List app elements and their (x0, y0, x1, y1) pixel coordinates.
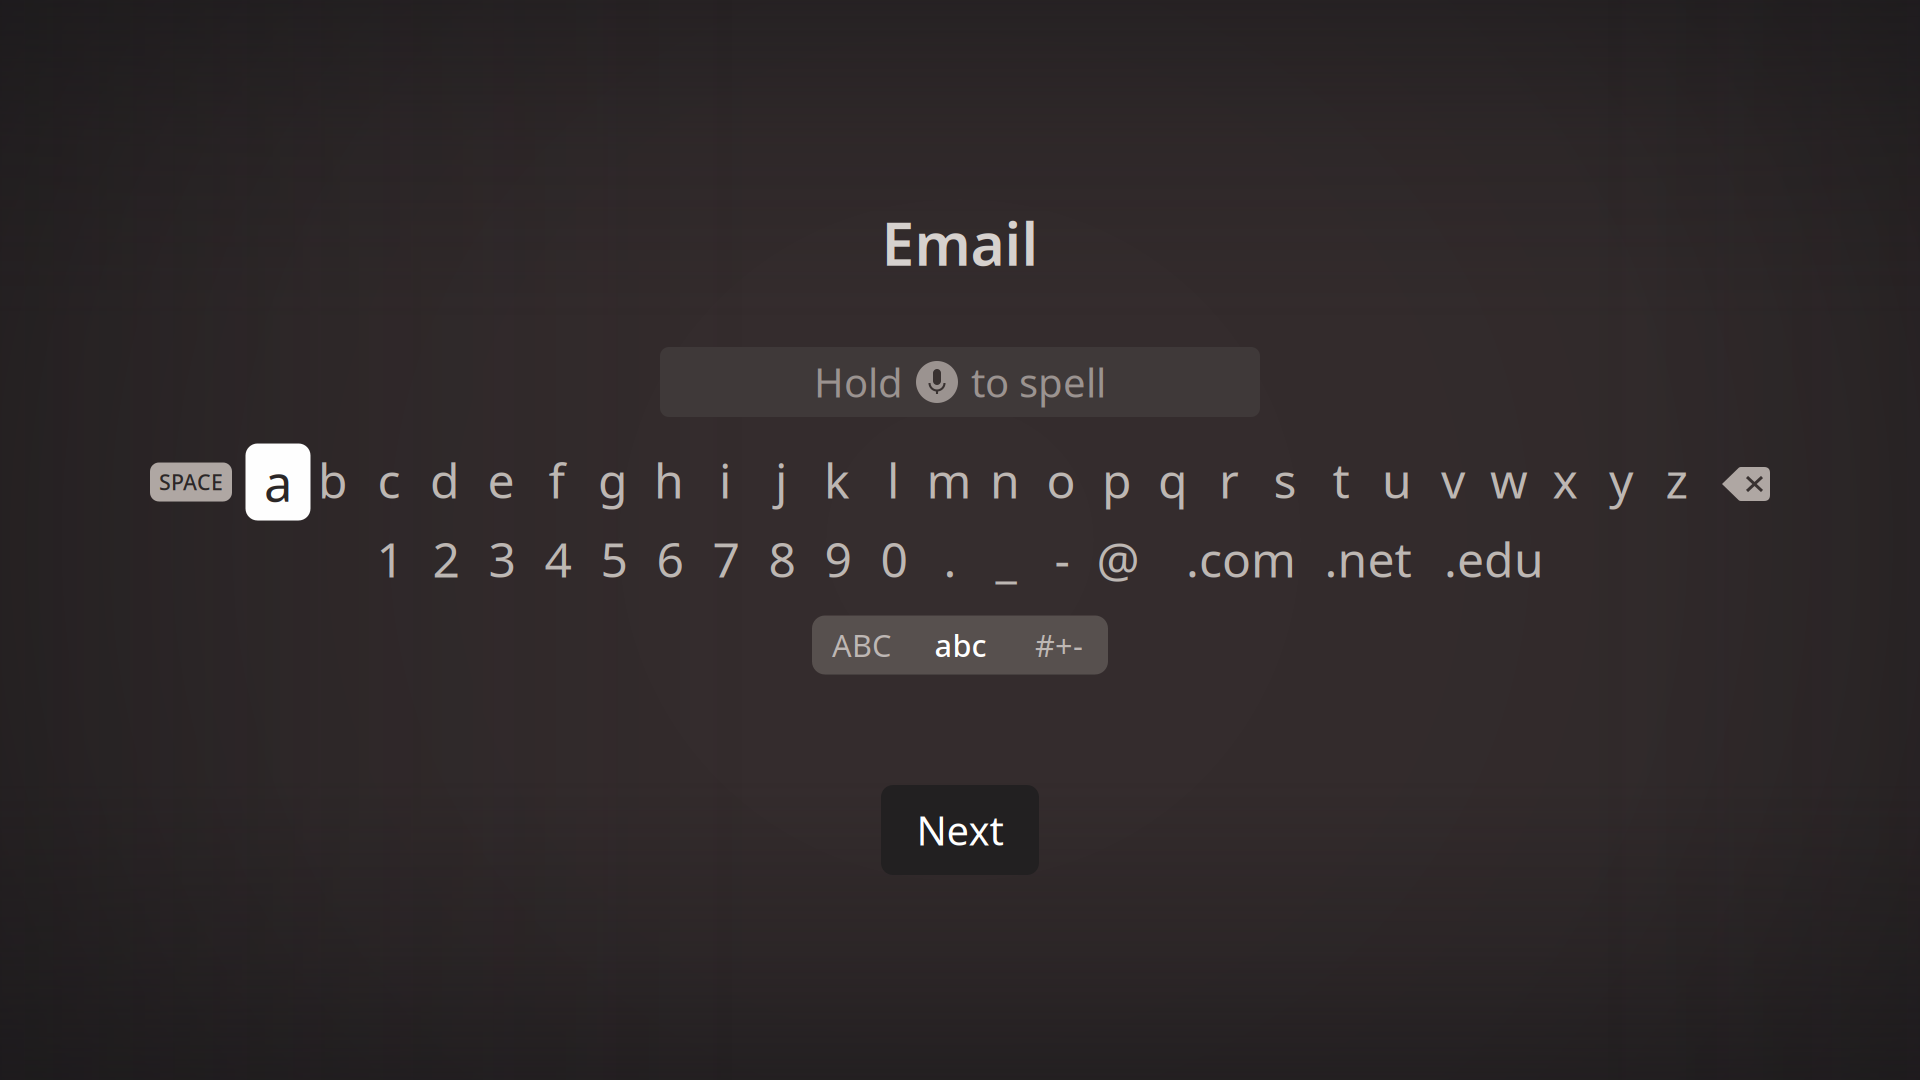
staticText: .com (1186, 527, 1296, 591)
button[interactable]: 8 (754, 522, 810, 596)
button[interactable]: 4 (530, 522, 586, 596)
staticText: Hold (814, 355, 903, 408)
button[interactable]: x (1537, 443, 1593, 517)
button[interactable]: 3 (474, 522, 530, 596)
staticText: r (1219, 448, 1239, 512)
staticText: . (943, 527, 956, 591)
staticText: 5 (600, 527, 627, 591)
staticText: - (1054, 527, 1069, 591)
staticText: z (1665, 448, 1688, 512)
button[interactable]: n (977, 443, 1033, 517)
staticText: 0 (880, 527, 907, 591)
staticText: q (1158, 448, 1188, 512)
button[interactable]: b (305, 443, 361, 517)
staticText: b (318, 448, 348, 512)
staticText: l (887, 448, 899, 512)
staticText: x (1552, 448, 1577, 512)
button[interactable]: 0 (866, 522, 922, 596)
staticText: k (824, 448, 850, 512)
staticText: @ (1096, 527, 1139, 591)
staticText: .edu (1444, 527, 1544, 591)
staticText: n (990, 448, 1020, 512)
staticText: #+- (1035, 625, 1083, 665)
staticText: 7 (712, 527, 739, 591)
button[interactable]: 7 (698, 522, 754, 596)
staticText: m (926, 448, 971, 512)
button[interactable]: Delete (1722, 465, 1772, 503)
button[interactable]: z (1649, 443, 1705, 517)
button[interactable]: k (809, 443, 865, 517)
staticText: y (1609, 448, 1633, 512)
staticText: to spell (971, 355, 1106, 408)
button[interactable]: d (417, 443, 473, 517)
staticText: e (487, 448, 514, 512)
button[interactable]: f (529, 443, 585, 517)
staticText: d (430, 448, 460, 512)
button[interactable]: 9 (810, 522, 866, 596)
button[interactable]: 5 (586, 522, 642, 596)
staticText: u (1382, 448, 1412, 512)
staticText: t (1332, 448, 1349, 512)
button[interactable]: t (1313, 443, 1369, 517)
button[interactable]: j (753, 443, 809, 517)
button[interactable]: .edu (1433, 522, 1555, 596)
button[interactable]: . (922, 522, 978, 596)
staticText: j (775, 448, 787, 512)
staticText: 8 (768, 527, 795, 591)
staticText: a (264, 448, 292, 516)
button[interactable]: @ (1090, 522, 1146, 596)
button[interactable]: y (1593, 443, 1649, 517)
button[interactable]: SPACE (150, 462, 232, 501)
staticText: _ (995, 527, 1016, 591)
staticText: c (377, 448, 400, 512)
button[interactable]: v (1425, 443, 1481, 517)
button[interactable]: g (585, 443, 641, 517)
staticText: i (719, 448, 731, 512)
staticText: Next (916, 803, 1003, 856)
staticText: p (1102, 448, 1132, 512)
staticText: o (1046, 448, 1075, 512)
button[interactable]: h (641, 443, 697, 517)
button[interactable]: r (1201, 443, 1257, 517)
button[interactable]: m (921, 443, 977, 517)
button[interactable]: .com (1175, 522, 1307, 596)
staticText: g (598, 448, 628, 512)
button[interactable]: 6 (642, 522, 698, 596)
staticText: h (654, 448, 684, 512)
staticText: v (1441, 448, 1465, 512)
staticText: s (1273, 448, 1296, 512)
button[interactable]: w (1481, 443, 1537, 517)
button[interactable]: - (1034, 522, 1090, 596)
button[interactable]: ABC (812, 615, 911, 674)
staticText: 3 (488, 527, 515, 591)
button[interactable]: 2 (418, 522, 474, 596)
staticText: .net (1324, 527, 1411, 591)
button[interactable]: Next (881, 785, 1039, 875)
button[interactable]: .net (1312, 522, 1424, 596)
staticText: SPACE (159, 468, 223, 496)
staticText: Email (881, 204, 1038, 282)
staticText: 6 (656, 527, 683, 591)
staticText: 2 (432, 527, 459, 591)
button[interactable]: abc (911, 615, 1010, 674)
button[interactable]: q (1145, 443, 1201, 517)
button[interactable]: l (865, 443, 921, 517)
button[interactable]: p (1089, 443, 1145, 517)
staticText: f (548, 448, 565, 512)
staticText: 9 (824, 527, 851, 591)
button[interactable]: i (697, 443, 753, 517)
staticText: ABC (832, 625, 891, 665)
button[interactable]: a (245, 443, 310, 520)
button[interactable]: _ (978, 522, 1034, 596)
button[interactable]: e (473, 443, 529, 517)
staticText: w (1490, 448, 1528, 512)
staticText: 4 (544, 527, 571, 591)
staticText: abc (934, 625, 986, 665)
button[interactable]: #+- (1010, 615, 1108, 674)
button[interactable]: 1 (362, 522, 418, 596)
button[interactable]: u (1369, 443, 1425, 517)
button[interactable]: s (1257, 443, 1313, 517)
staticText: 1 (376, 527, 403, 591)
button[interactable]: o (1033, 443, 1089, 517)
button[interactable]: c (361, 443, 417, 517)
